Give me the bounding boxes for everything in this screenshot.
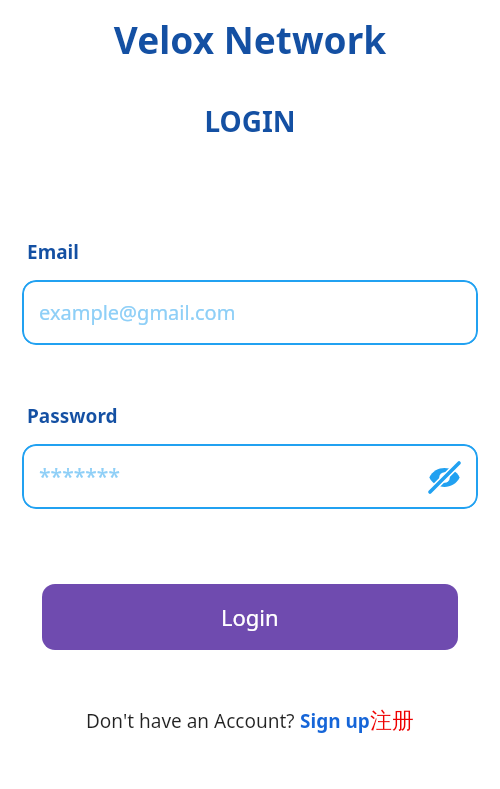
staticText: Velox Network <box>0 14 500 64</box>
button[interactable]: Hide password <box>424 457 464 497</box>
staticText: Login <box>221 602 279 632</box>
button[interactable]: ******* <box>22 444 478 509</box>
staticText: example@gmail.com <box>39 299 236 326</box>
staticText: ******* <box>39 462 120 491</box>
staticText: Don't have an Account? <box>86 708 300 734</box>
staticText: 注册 <box>370 707 414 735</box>
staticText: Password <box>27 403 118 429</box>
staticText: Email <box>27 239 79 265</box>
button[interactable]: Login <box>42 584 458 650</box>
button[interactable]: example@gmail.com <box>22 280 478 345</box>
button[interactable]: Sign up <box>300 707 414 735</box>
staticText: LOGIN <box>0 102 500 140</box>
staticText: Sign up <box>300 708 370 734</box>
